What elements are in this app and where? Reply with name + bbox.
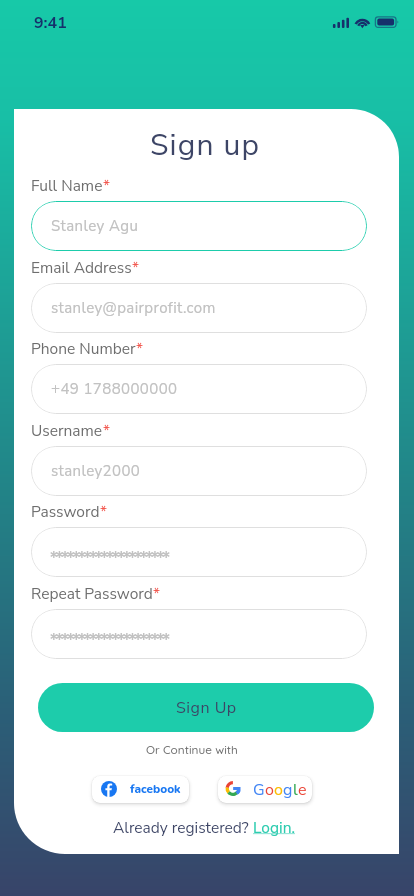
staticText: Email Address (31, 257, 132, 278)
staticText: Phone Number (31, 338, 136, 359)
button[interactable] (31, 609, 367, 659)
staticText: * (132, 257, 139, 278)
staticText: l (293, 779, 298, 801)
staticText: * (103, 175, 110, 196)
button[interactable]: facebook (92, 776, 189, 803)
staticText: Password (31, 501, 100, 522)
staticText: * (153, 583, 160, 604)
staticText: Full Name (31, 175, 103, 196)
staticText: facebook (130, 781, 181, 797)
button[interactable]: Sign Up (38, 683, 374, 732)
staticText: g (283, 779, 293, 801)
staticText: o (265, 779, 274, 801)
staticText: Sign Up (176, 697, 237, 719)
button[interactable]: +49 1788000000 (31, 364, 367, 414)
button[interactable]: G (218, 776, 312, 803)
staticText: Login. (253, 817, 295, 838)
staticText: Repeat Password (31, 583, 153, 604)
staticText: Stanley Agu (51, 216, 139, 236)
staticText: 9:41 (34, 12, 67, 34)
staticText: Sign up (150, 125, 261, 166)
staticText: * (103, 420, 110, 441)
staticText: * (100, 501, 107, 522)
staticText: G (253, 779, 265, 801)
button[interactable]: stanley2000 (31, 446, 367, 496)
staticText: Already registered? (113, 817, 253, 838)
button[interactable]: Login. (253, 817, 295, 838)
staticText: Username (31, 420, 103, 441)
staticText: +49 1788000000 (51, 379, 178, 399)
staticText: Or Continue with (146, 742, 238, 757)
button[interactable]: Stanley Agu (31, 201, 367, 251)
staticText: stanley@pairprofit.com (51, 298, 216, 318)
staticText: stanley2000 (51, 461, 141, 481)
staticText: * (136, 338, 143, 359)
staticText: e (298, 779, 307, 801)
button[interactable]: stanley@pairprofit.com (31, 283, 367, 333)
button[interactable] (31, 527, 367, 577)
staticText: o (274, 779, 283, 801)
